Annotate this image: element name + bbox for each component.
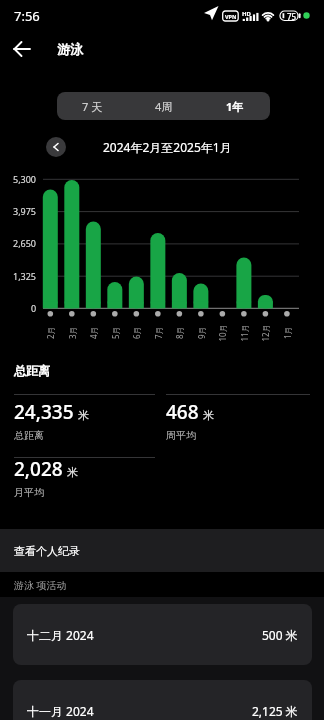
staticText: 75 bbox=[287, 11, 297, 21]
staticText: 十二月 2024 bbox=[27, 627, 94, 643]
staticText: 1月 bbox=[282, 326, 293, 339]
staticText: 5,300 bbox=[13, 173, 37, 185]
staticText: 468 bbox=[166, 399, 199, 425]
staticText: 5月 bbox=[110, 326, 121, 339]
staticText: 10月 bbox=[216, 323, 227, 341]
staticText: 7月 bbox=[153, 326, 164, 339]
staticText: 2,028 bbox=[14, 456, 63, 482]
staticText: 2月 bbox=[45, 326, 56, 339]
staticText: 1,325 bbox=[13, 270, 37, 282]
button[interactable]: 十一月 2024 bbox=[13, 680, 312, 720]
staticText: 7:56 bbox=[14, 7, 40, 25]
button[interactable] bbox=[45, 137, 67, 159]
staticText: 米 bbox=[67, 465, 78, 479]
staticText: 周平均 bbox=[166, 429, 196, 442]
staticText: 月平均 bbox=[14, 486, 44, 499]
staticText: 总距离 bbox=[14, 363, 50, 378]
staticText: 十一月 2024 bbox=[27, 703, 94, 719]
staticText: 4周 bbox=[155, 99, 173, 114]
staticText: 7 天 bbox=[82, 99, 103, 114]
staticText: 2024年2月至2025年1月 bbox=[103, 139, 232, 155]
staticText: 0 bbox=[31, 302, 37, 314]
staticText: 1年 bbox=[226, 99, 244, 114]
staticText: 米 bbox=[78, 408, 89, 422]
staticText: 游泳 bbox=[57, 41, 83, 57]
staticText: 2,650 bbox=[13, 237, 37, 249]
staticText: 4月 bbox=[88, 326, 99, 339]
staticText: 8月 bbox=[174, 326, 185, 339]
staticText: 米 bbox=[203, 408, 214, 422]
staticText: 3,975 bbox=[13, 205, 37, 217]
button[interactable] bbox=[8, 38, 42, 62]
staticText: VPN bbox=[225, 13, 237, 20]
button[interactable]: 查看个人纪录 bbox=[0, 529, 324, 572]
staticText: 游泳 项活动 bbox=[14, 578, 67, 592]
staticText: 总距离 bbox=[14, 429, 44, 442]
staticText: 9月 bbox=[196, 326, 207, 339]
staticText: 500 米 bbox=[262, 627, 298, 643]
staticText: 6月 bbox=[131, 326, 142, 339]
staticText: 查看个人纪录 bbox=[14, 544, 80, 558]
button[interactable]: 1年 bbox=[199, 92, 270, 120]
staticText: 12月 bbox=[259, 323, 270, 341]
staticText: 3月 bbox=[67, 326, 78, 339]
staticText: HD bbox=[242, 10, 251, 18]
button[interactable]: 4周 bbox=[128, 92, 199, 120]
button[interactable]: 十二月 2024 bbox=[13, 604, 312, 665]
staticText: 24,335 bbox=[14, 399, 74, 425]
button[interactable]: 7 天 bbox=[57, 92, 128, 120]
staticText: 11月 bbox=[238, 323, 249, 341]
staticText: 2,125 米 bbox=[252, 703, 298, 719]
